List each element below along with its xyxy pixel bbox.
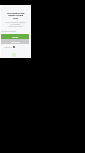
staticText: We are currently updating	[0, 21, 31, 23]
button[interactable]: No Thanks	[1, 39, 29, 44]
staticText: No Thanks	[11, 41, 20, 43]
staticText: Contact us	[4, 46, 12, 48]
staticText: Website Coming	[0, 14, 31, 17]
button[interactable]: Contact us	[4, 46, 15, 48]
button[interactable]: Submit	[1, 34, 29, 39]
staticText: Submit	[12, 36, 18, 38]
staticText: our website.	[0, 23, 31, 25]
button[interactable]: Logo	[12, 53, 16, 57]
staticText: Your email address	[1, 30, 17, 32]
staticText: New America Legal	[0, 12, 31, 15]
staticText: Soon!	[0, 17, 31, 20]
staticText: Check back soon!	[0, 25, 31, 27]
